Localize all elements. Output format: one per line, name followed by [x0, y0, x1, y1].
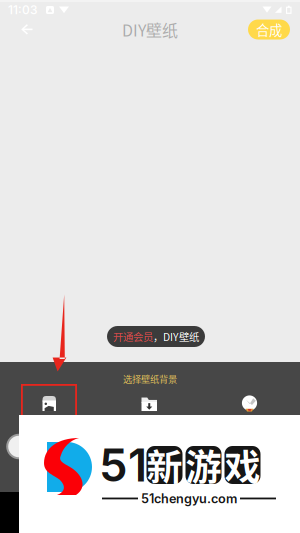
- button[interactable]: Back: [8, 18, 46, 41]
- button[interactable]: Colour swatch: [186, 433, 212, 459]
- button[interactable]: Colour swatch: [114, 433, 140, 459]
- staticText: 合成: [256, 20, 282, 39]
- button[interactable]: Colour swatch: [78, 433, 104, 459]
- staticText: 51: [99, 438, 147, 492]
- staticText: 51chengyu.com: [141, 491, 237, 506]
- staticText: 戏: [224, 439, 260, 491]
- staticText: 11:03: [8, 3, 38, 17]
- staticText: 选择壁纸背景: [123, 372, 177, 385]
- staticText: ，DIY壁纸: [153, 329, 199, 344]
- staticText: DIY壁纸: [122, 18, 178, 41]
- button[interactable]: Choose photo: [0, 393, 100, 415]
- staticText: 游: [185, 439, 221, 491]
- button[interactable]: Colour swatch: [150, 433, 176, 459]
- button[interactable]: 开通会员: [107, 326, 205, 347]
- button[interactable]: Colour swatch: [6, 433, 32, 459]
- button[interactable]: Colour swatch: [222, 433, 248, 459]
- button[interactable]: Downloads: [100, 393, 200, 415]
- button[interactable]: 合成: [248, 19, 290, 39]
- button[interactable]: Colour swatch: [42, 433, 68, 459]
- button[interactable]: Stickers: [200, 393, 300, 415]
- staticText: 新: [146, 439, 182, 491]
- staticText: 开通会员: [113, 329, 153, 344]
